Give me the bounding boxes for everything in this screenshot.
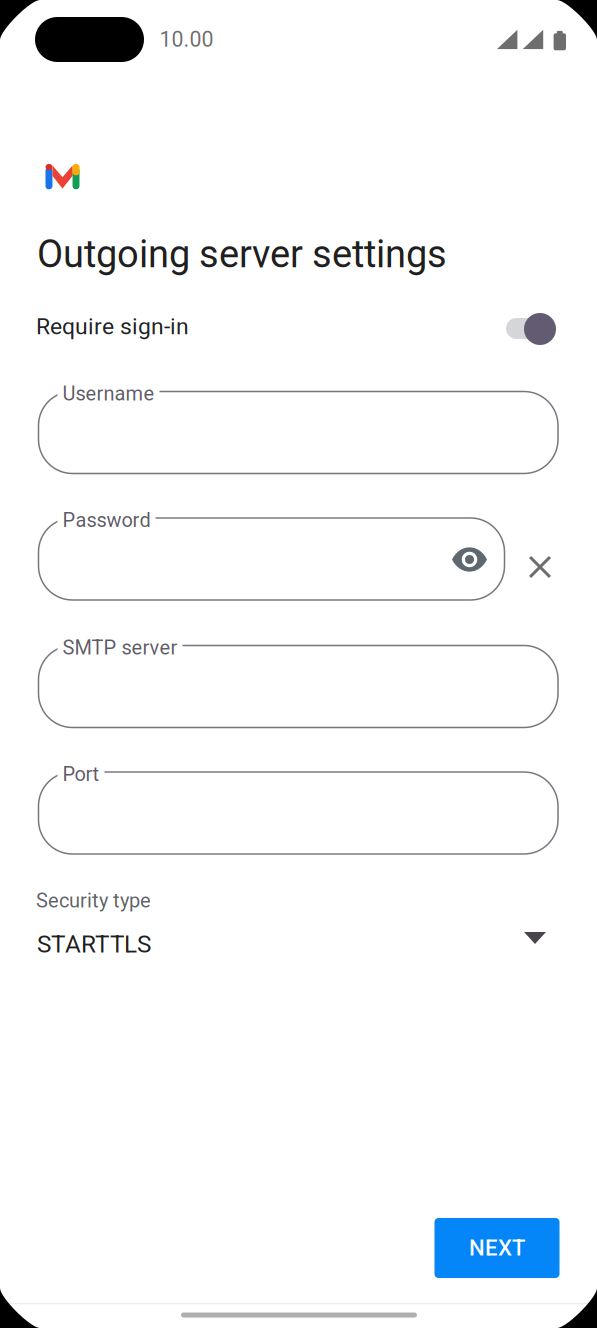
staticText: Require sign-in [36, 313, 189, 340]
staticText: Port [62, 762, 99, 786]
button[interactable]: Clear password [529, 556, 551, 578]
staticText: NEXT [469, 1235, 525, 1261]
button[interactable]: NEXT [434, 1218, 559, 1278]
button[interactable]: Show password [452, 548, 487, 571]
staticText: 10.00 [159, 27, 213, 52]
staticText: Username [62, 382, 154, 405]
staticText: STARTTLS [37, 930, 151, 958]
button[interactable]: Security type [524, 932, 546, 944]
button[interactable]: Require sign-in [497, 297, 553, 345]
staticText: SMTP server [62, 636, 177, 659]
staticText: Outgoing server settings [37, 232, 447, 276]
staticText: Password [62, 508, 150, 532]
staticText: Security type [36, 889, 151, 912]
